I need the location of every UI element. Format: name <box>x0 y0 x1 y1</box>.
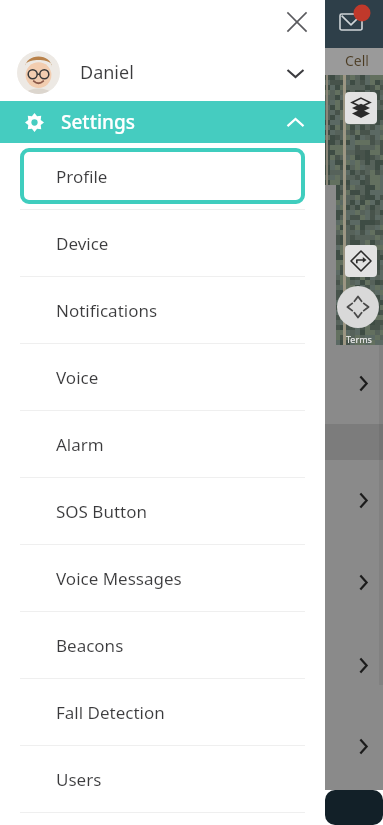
button[interactable]: Device <box>0 210 325 276</box>
button[interactable]: Voice <box>0 344 325 410</box>
staticText: Notifications <box>56 299 158 322</box>
staticText: Users <box>56 768 102 791</box>
other: Expand profile <box>275 53 315 93</box>
staticText: Cell <box>345 51 369 70</box>
button[interactable]: Open <box>352 489 374 511</box>
staticText: Voice Messages <box>56 567 182 590</box>
staticText: Terms <box>346 333 372 345</box>
button[interactable]: Profile <box>0 143 325 209</box>
staticText: Beacons <box>56 634 124 657</box>
button[interactable]: Notifications <box>0 277 325 343</box>
button[interactable]: Beacons <box>0 612 325 678</box>
button[interactable]: Open <box>352 571 374 593</box>
button[interactable]: Daniel <box>0 44 325 101</box>
staticText: Daniel <box>80 60 134 85</box>
staticText: SOS Button <box>56 500 147 523</box>
button[interactable]: Fall Detection <box>0 679 325 745</box>
button[interactable]: Open <box>352 735 374 757</box>
button[interactable]: Voice Messages <box>0 545 325 611</box>
staticText: Alarm <box>56 433 104 456</box>
button[interactable]: Settings <box>0 101 325 143</box>
button[interactable]: SOS Button <box>0 478 325 544</box>
button[interactable]: Alarm <box>0 411 325 477</box>
staticText: Voice <box>56 366 99 389</box>
button[interactable]: Open <box>352 372 374 394</box>
staticText: Profile <box>56 165 108 188</box>
button[interactable]: Users <box>0 746 325 812</box>
staticText: Settings <box>61 109 135 135</box>
button[interactable]: Open <box>352 654 374 676</box>
button[interactable]: Close <box>275 0 319 44</box>
staticText: Fall Detection <box>56 701 165 724</box>
other: Collapse settings <box>277 104 313 140</box>
staticText: Device <box>56 232 109 255</box>
